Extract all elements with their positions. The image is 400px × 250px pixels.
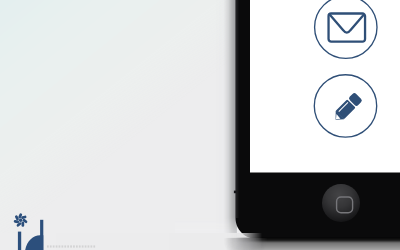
button[interactable]: Mail [314,0,378,59]
button[interactable]: Home [322,184,363,225]
button[interactable]: Compose [314,74,378,138]
